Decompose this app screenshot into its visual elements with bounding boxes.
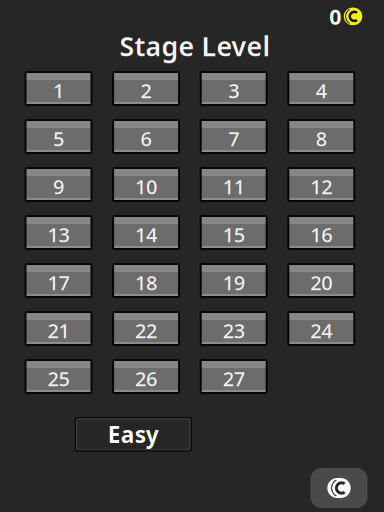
button[interactable]: 23 — [200, 311, 268, 346]
staticText: 23 — [223, 317, 245, 344]
staticText: 9 — [53, 173, 64, 200]
staticText: 1 — [53, 77, 64, 104]
button[interactable]: 16 — [287, 215, 355, 250]
button[interactable]: 14 — [112, 215, 180, 250]
staticText: 16 — [310, 221, 332, 248]
staticText: 27 — [223, 365, 245, 392]
button[interactable]: 2 — [112, 71, 180, 106]
staticText: 18 — [135, 269, 157, 296]
button[interactable]: 12 — [287, 167, 355, 202]
staticText: 17 — [47, 269, 69, 296]
staticText: 11 — [223, 173, 245, 200]
button[interactable]: 6 — [112, 119, 180, 154]
button[interactable]: Easy — [75, 417, 192, 452]
staticText: Easy — [108, 419, 159, 449]
staticText: 10 — [135, 173, 157, 200]
staticText: 19 — [223, 269, 245, 296]
button[interactable]: 20 — [287, 263, 355, 298]
button[interactable]: 9 — [24, 167, 92, 202]
button[interactable]: 7 — [200, 119, 268, 154]
button[interactable]: 1 — [24, 71, 92, 106]
button[interactable]: 26 — [112, 359, 180, 394]
staticText: 21 — [47, 317, 69, 344]
button[interactable]: 17 — [24, 263, 92, 298]
button[interactable]: 19 — [200, 263, 268, 298]
staticText: 12 — [310, 173, 332, 200]
staticText: 14 — [135, 221, 157, 248]
staticText: 5 — [53, 125, 64, 152]
staticText: 26 — [135, 365, 157, 392]
staticText: 0 — [329, 2, 341, 30]
staticText: 2 — [141, 77, 152, 104]
button[interactable]: 11 — [200, 167, 268, 202]
staticText: 8 — [316, 125, 327, 152]
staticText: 24 — [310, 317, 332, 344]
button[interactable]: 15 — [200, 215, 268, 250]
staticText: 3 — [228, 77, 239, 104]
staticText: 25 — [47, 365, 69, 392]
button[interactable]: Coin shop — [310, 468, 367, 508]
button[interactable]: 22 — [112, 311, 180, 346]
button[interactable]: 3 — [200, 71, 268, 106]
button[interactable]: 4 — [287, 71, 355, 106]
button[interactable]: 8 — [287, 119, 355, 154]
button[interactable]: 18 — [112, 263, 180, 298]
button[interactable]: 13 — [24, 215, 92, 250]
staticText: Stage Level — [119, 28, 270, 64]
staticText: 6 — [141, 125, 152, 152]
staticText: 20 — [310, 269, 332, 296]
button[interactable]: 10 — [112, 167, 180, 202]
button[interactable]: 27 — [200, 359, 268, 394]
button[interactable]: 25 — [24, 359, 92, 394]
staticText: 15 — [223, 221, 245, 248]
button[interactable]: 24 — [287, 311, 355, 346]
button[interactable]: 21 — [24, 311, 92, 346]
staticText: 13 — [47, 221, 69, 248]
button[interactable]: 5 — [24, 119, 92, 154]
staticText: 7 — [228, 125, 239, 152]
staticText: 22 — [135, 317, 157, 344]
staticText: 4 — [316, 77, 327, 104]
